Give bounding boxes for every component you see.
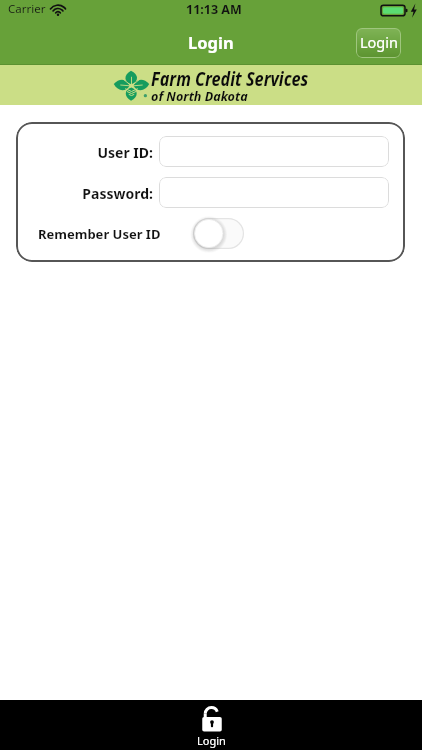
staticText: Login [188,31,234,53]
staticText: Carrier [8,1,46,17]
staticText: Login [197,733,226,748]
button[interactable]: Remember User ID [193,218,244,249]
staticText: Farm Credit Services [151,66,308,92]
staticText: 11:13 AM [186,1,242,18]
staticText: User ID: [63,143,153,162]
staticText: of North Dakota [151,87,248,101]
button[interactable]: Login [356,28,401,58]
staticText: Login [360,32,398,52]
staticText: Remember User ID [38,225,161,243]
button[interactable]: User ID input field [159,136,389,167]
button[interactable]: Password input field [159,177,389,208]
button[interactable]: Login [161,700,262,750]
staticText: Password: [63,184,153,203]
